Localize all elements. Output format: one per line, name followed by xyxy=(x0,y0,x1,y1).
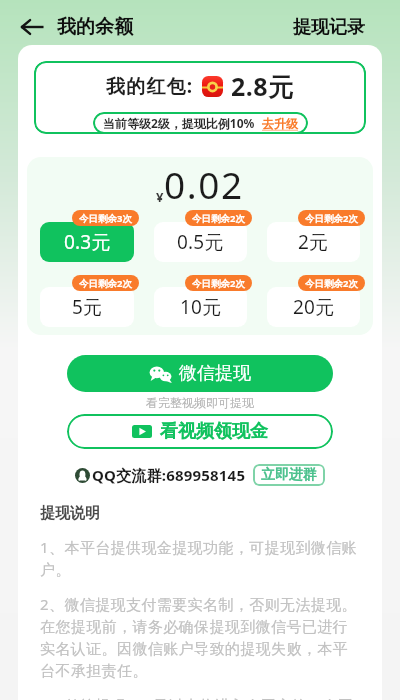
staticText: 今日剩余2次 xyxy=(79,277,132,290)
button[interactable]: 10元 xyxy=(154,287,247,327)
staticText: 20元 xyxy=(293,294,335,320)
button[interactable]: 2元 xyxy=(267,222,360,262)
staticText: 看视频领现金 xyxy=(160,420,268,443)
staticText: 立即进群 xyxy=(261,466,317,484)
button[interactable]: 0.3元 xyxy=(40,222,134,262)
staticText: 当前等级2级，提现比例10% xyxy=(103,115,255,131)
staticText: 提现说明 xyxy=(40,504,100,523)
staticText: 今日剩余3次 xyxy=(79,212,132,225)
staticText: 2.8元 xyxy=(231,69,294,103)
staticText: 0.5元 xyxy=(177,229,224,255)
staticText: 0.02 xyxy=(164,159,244,209)
button[interactable]: 20元 xyxy=(267,287,360,327)
staticText: 提现记录 xyxy=(293,16,365,39)
staticText: 今日剩余2次 xyxy=(192,277,245,290)
staticText: 今日剩余2次 xyxy=(305,277,358,290)
staticText: 今日剩余2次 xyxy=(305,212,358,225)
staticText: ¥ xyxy=(156,188,164,206)
button[interactable]: 立即进群 xyxy=(253,464,325,486)
staticText: 3、单笔提现100元以上将进入人工审核，人工审核通常需要3-10个工作日，审核期… xyxy=(40,695,362,700)
button[interactable]: 微信提现 xyxy=(67,355,333,392)
staticText: 微信提现 xyxy=(179,362,251,385)
button[interactable]: 5元 xyxy=(40,287,134,327)
staticText: 我的红包: xyxy=(106,73,194,99)
staticText: 2元 xyxy=(298,229,329,255)
staticText: 去升级 xyxy=(262,116,298,131)
button[interactable]: 当前等级2级，提现比例10% xyxy=(93,112,308,134)
staticText: 5元 xyxy=(72,294,103,320)
button[interactable]: 0.5元 xyxy=(154,222,247,262)
staticText: 看完整视频即可提现 xyxy=(146,395,254,410)
button[interactable]: 提现记录 xyxy=(293,16,365,39)
staticText: 10元 xyxy=(180,294,222,320)
staticText: 今日剩余2次 xyxy=(192,212,245,225)
staticText: 0.3元 xyxy=(64,229,111,255)
staticText: QQ交流群:689958145 xyxy=(92,465,246,485)
staticText: 我的余额 xyxy=(57,15,133,39)
staticText: 1、本平台提供现金提现功能，可提现到微信账户。 xyxy=(40,537,362,580)
button[interactable]: Back xyxy=(18,13,46,41)
button[interactable]: 看视频领现金 xyxy=(67,414,333,449)
staticText: 2、微信提现支付需要实名制，否则无法提现。在您提现前，请务必确保提现到微信号已进… xyxy=(40,594,362,681)
